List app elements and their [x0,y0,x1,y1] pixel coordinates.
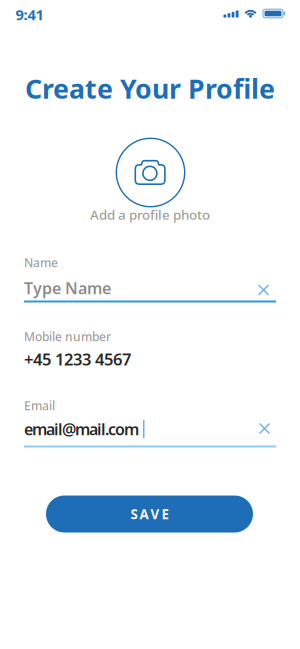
staticText: +45 1233 4567 [24,348,131,370]
button[interactable]: Clear name [258,284,269,295]
button[interactable]: Add a profile photo [80,136,220,224]
staticText: Add a profile photo [90,206,210,223]
staticText: 9:41 [15,5,43,24]
staticText: Email [24,397,55,413]
staticText: SAVE [130,505,168,523]
staticText: Mobile number [24,328,111,344]
button[interactable]: Clear email [259,423,270,434]
staticText: Create Your Profile [25,71,275,106]
button[interactable]: SAVE [46,495,253,532]
staticText: Type Name [24,277,111,299]
staticText: email@mail.com [24,418,139,440]
staticText: Name [24,254,58,270]
